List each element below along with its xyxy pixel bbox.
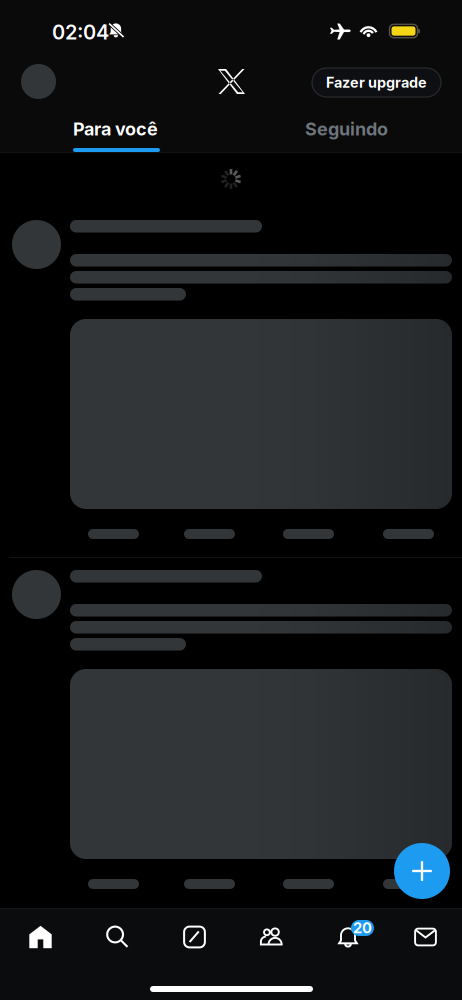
staticText: 02:04 <box>52 20 109 44</box>
staticText: Fazer upgrade <box>326 74 427 91</box>
button[interactable]: Home <box>2 909 79 965</box>
button[interactable]: Post <box>394 843 450 899</box>
button[interactable]: Seguindo <box>231 105 462 153</box>
staticText: 20 <box>353 919 372 937</box>
button[interactable]: Messages <box>387 909 462 965</box>
button[interactable]: Para você <box>0 105 231 153</box>
staticText: Para você <box>73 118 158 140</box>
button[interactable]: Search <box>79 909 156 965</box>
button[interactable]: Notifications, 20 unread <box>310 909 387 965</box>
staticText: Seguindo <box>305 118 388 140</box>
button[interactable]: Grok <box>156 909 233 965</box>
button[interactable]: Fazer upgrade <box>312 68 441 97</box>
button[interactable]: Communities <box>233 909 310 965</box>
button[interactable]: Profile <box>21 64 56 99</box>
